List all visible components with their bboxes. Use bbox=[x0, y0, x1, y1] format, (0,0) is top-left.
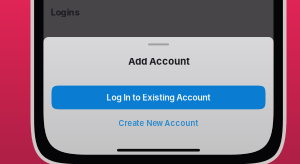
button[interactable]: Log In to Existing Account bbox=[51, 86, 265, 109]
staticText: Logins bbox=[51, 7, 80, 18]
staticText: Create New Account bbox=[118, 118, 198, 128]
staticText: Log In to Existing Account bbox=[106, 92, 210, 103]
staticText: Add Account bbox=[128, 55, 190, 67]
button[interactable]: Create New Account bbox=[51, 113, 265, 133]
